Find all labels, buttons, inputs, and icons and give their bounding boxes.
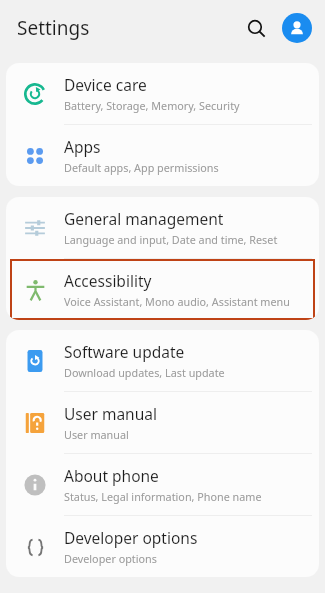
staticText: Device care bbox=[64, 74, 147, 95]
staticText: Apps bbox=[64, 136, 101, 157]
button[interactable]: Developer options bbox=[6, 516, 319, 577]
staticText: Developer options bbox=[64, 527, 198, 548]
staticText: Settings bbox=[17, 15, 90, 41]
staticText: Default apps, App permissions bbox=[64, 160, 219, 175]
staticText: Software update bbox=[64, 341, 185, 362]
staticText: Language and input, Date and time, Reset bbox=[64, 232, 278, 247]
staticText: General management bbox=[64, 208, 224, 229]
staticText: Developer options bbox=[64, 551, 157, 566]
staticText: User manual bbox=[64, 427, 129, 442]
staticText: About phone bbox=[64, 465, 159, 486]
button[interactable]: Software update bbox=[6, 330, 319, 391]
staticText: Download updates, Last update bbox=[64, 365, 225, 380]
staticText: Accessibility bbox=[64, 270, 152, 291]
button[interactable]: Apps bbox=[6, 125, 319, 186]
staticText: Battery, Storage, Memory, Security bbox=[64, 98, 240, 113]
staticText: Voice Assistant, Mono audio, Assistant m… bbox=[64, 294, 290, 309]
button[interactable]: User manual bbox=[6, 392, 319, 453]
staticText: User manual bbox=[64, 403, 157, 424]
button[interactable]: Account bbox=[282, 13, 312, 43]
button[interactable]: Accessibility bbox=[10, 259, 315, 320]
staticText: Status, Legal information, Phone name bbox=[64, 489, 262, 504]
button[interactable]: General management bbox=[6, 197, 319, 258]
button[interactable]: About phone bbox=[6, 454, 319, 515]
button[interactable]: Search bbox=[239, 11, 273, 45]
button[interactable]: Device care bbox=[6, 63, 319, 124]
